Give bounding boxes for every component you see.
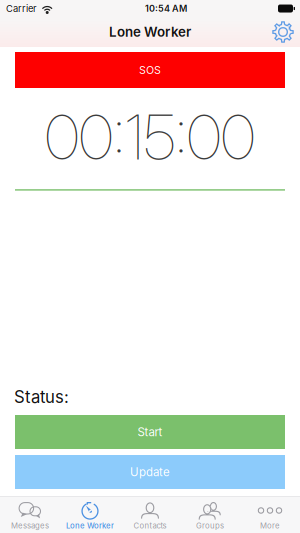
staticText: Carrier [6,3,37,14]
button[interactable]: More [240,496,300,533]
staticText: Messages [11,521,49,530]
staticText: Update [130,465,170,479]
button[interactable]: Start [15,415,285,449]
button[interactable]: SOS [15,52,285,88]
staticText: Start [137,425,162,439]
button[interactable]: Messages [0,496,60,533]
button[interactable]: Contacts [120,496,180,533]
staticText: 10:54 AM [145,3,187,14]
staticText: Lone Worker [109,24,191,40]
button[interactable]: Update [15,455,285,489]
button[interactable]: Settings [272,21,300,43]
staticText: Contacts [133,521,166,530]
button[interactable]: Groups [180,496,240,533]
staticText: Status: [14,387,69,407]
staticText: Groups [196,521,224,530]
staticText: SOS [139,63,161,76]
staticText: More [260,521,280,530]
button[interactable]: Lone Worker [60,496,120,533]
staticText: 00:15:00 [45,100,255,174]
staticText: Lone Worker [66,521,114,530]
